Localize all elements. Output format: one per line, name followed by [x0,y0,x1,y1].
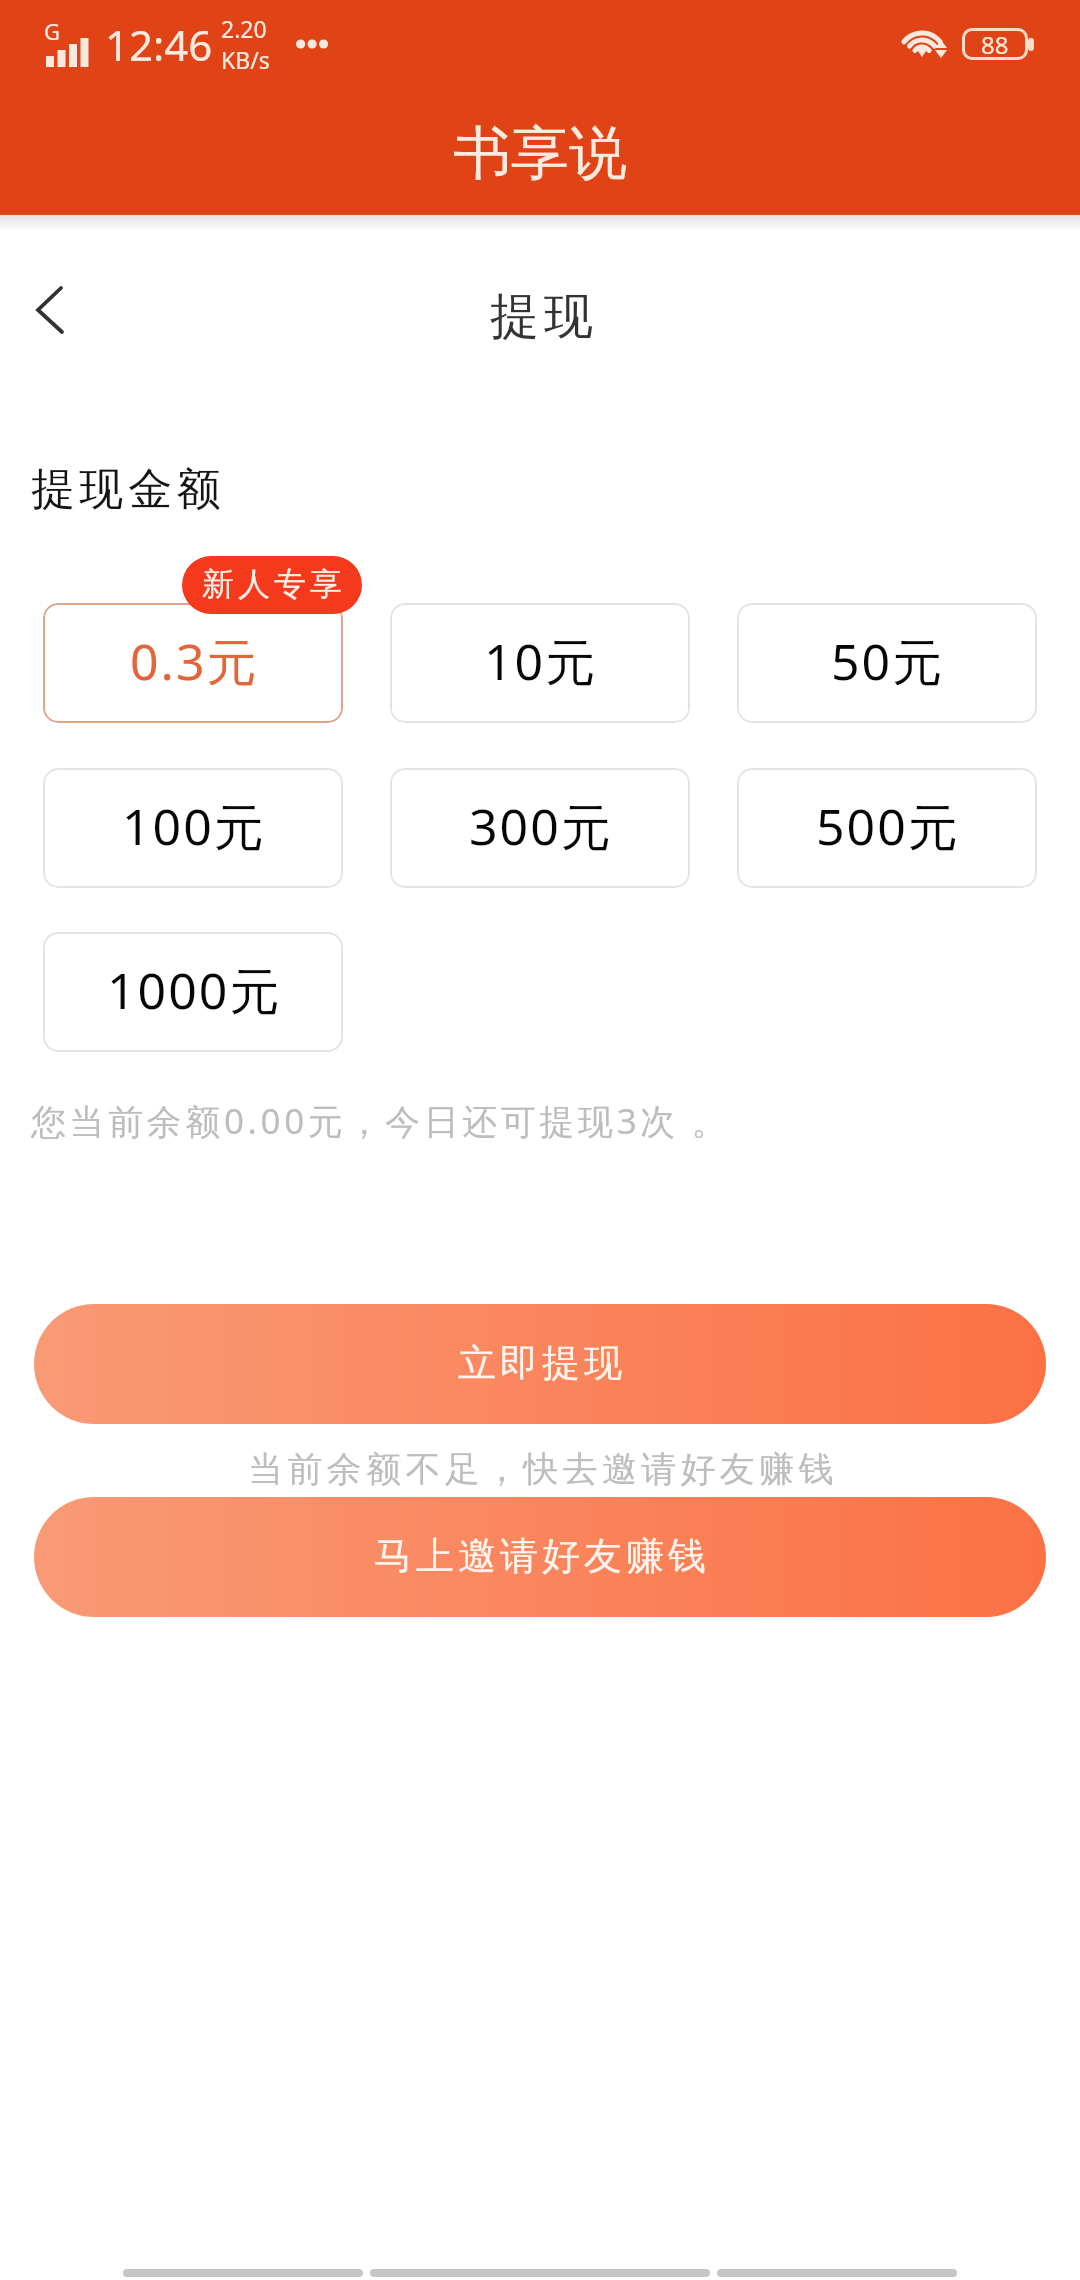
button[interactable]: 300元 [390,768,690,888]
staticText: 12:46 [105,16,213,73]
button[interactable]: 马上邀请好友赚钱 [34,1497,1046,1617]
staticText: 书享说 [453,117,627,190]
button[interactable]: Back [13,272,89,348]
button[interactable]: 50元 [737,603,1037,723]
button[interactable]: 10元 [390,603,690,723]
staticText: 50元 [831,627,945,695]
staticText: 300元 [469,792,613,860]
staticText: 2.20 [221,13,267,44]
staticText: 提现 [4,286,1080,348]
staticText: 新人专享 [200,564,344,604]
button[interactable]: 1000元 [43,932,343,1052]
button[interactable]: 0.3元 [43,603,343,723]
staticText: 500元 [816,792,960,860]
staticText: 0.3元 [130,627,259,695]
staticText: 当前余额不足，快去邀请好友赚钱 [3,1447,1080,1491]
staticText: 100元 [122,792,266,860]
button[interactable]: 100元 [43,768,343,888]
button[interactable]: 500元 [737,768,1037,888]
staticText: 88 [981,28,1009,60]
staticText: 您当前余额0.00元，今日还可提现3次 。 [31,1097,731,1145]
staticText: 10元 [484,627,598,695]
staticText: 1000元 [107,956,282,1024]
staticText: 提现金额 [31,462,226,517]
staticText: 立即提现 [456,1339,624,1387]
staticText: G [44,16,61,46]
button[interactable]: 立即提现 [34,1304,1046,1424]
staticText: 马上邀请好友赚钱 [372,1532,708,1580]
staticText: KB/s [221,44,270,75]
